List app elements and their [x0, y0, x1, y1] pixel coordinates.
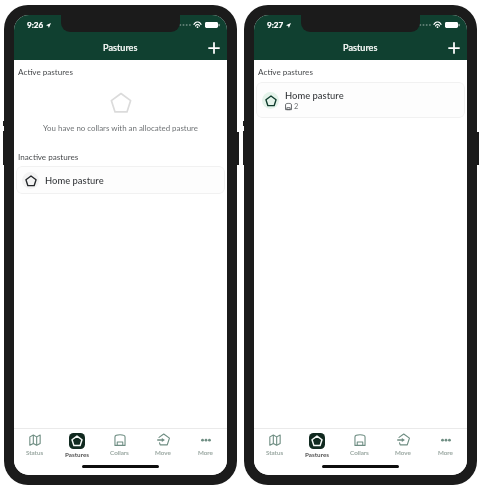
- staticText: Pastures: [103, 42, 138, 53]
- staticText: 9:27: [267, 20, 284, 30]
- button[interactable]: Pastures: [296, 429, 338, 462]
- staticText: Collars: [110, 449, 129, 457]
- staticText: Status: [26, 449, 44, 457]
- button[interactable]: Home pasture: [256, 82, 465, 118]
- button[interactable]: More: [184, 429, 227, 462]
- staticText: You have no collars with an allocated pa…: [43, 123, 198, 132]
- staticText: Move: [395, 449, 411, 457]
- button[interactable]: More: [424, 429, 467, 462]
- staticText: Active pastures: [258, 67, 313, 77]
- staticText: More: [198, 449, 213, 457]
- staticText: 9:26: [27, 20, 44, 30]
- button[interactable]: Collars: [338, 429, 381, 462]
- button[interactable]: Status: [14, 429, 56, 462]
- staticText: 2: [294, 102, 299, 111]
- button[interactable]: Move: [141, 429, 184, 462]
- staticText: Home pasture: [285, 90, 344, 101]
- button[interactable]: Status: [254, 429, 296, 462]
- button[interactable]: Move: [381, 429, 424, 462]
- staticText: More: [438, 449, 453, 457]
- staticText: Status: [266, 449, 284, 457]
- staticText: Home pasture: [45, 175, 104, 186]
- staticText: Collars: [350, 449, 369, 457]
- staticText: Pastures: [305, 451, 330, 459]
- button[interactable]: Collars: [98, 429, 141, 462]
- staticText: Pastures: [343, 42, 378, 53]
- button[interactable]: Home pasture: [16, 166, 225, 194]
- button[interactable]: Add pasture: [441, 35, 467, 60]
- staticText: Move: [155, 449, 171, 457]
- button[interactable]: Add pasture: [201, 35, 227, 60]
- staticText: Pastures: [65, 451, 90, 459]
- staticText: Active pastures: [18, 67, 73, 77]
- button[interactable]: Pastures: [56, 429, 98, 462]
- staticText: Inactive pastures: [18, 152, 79, 162]
